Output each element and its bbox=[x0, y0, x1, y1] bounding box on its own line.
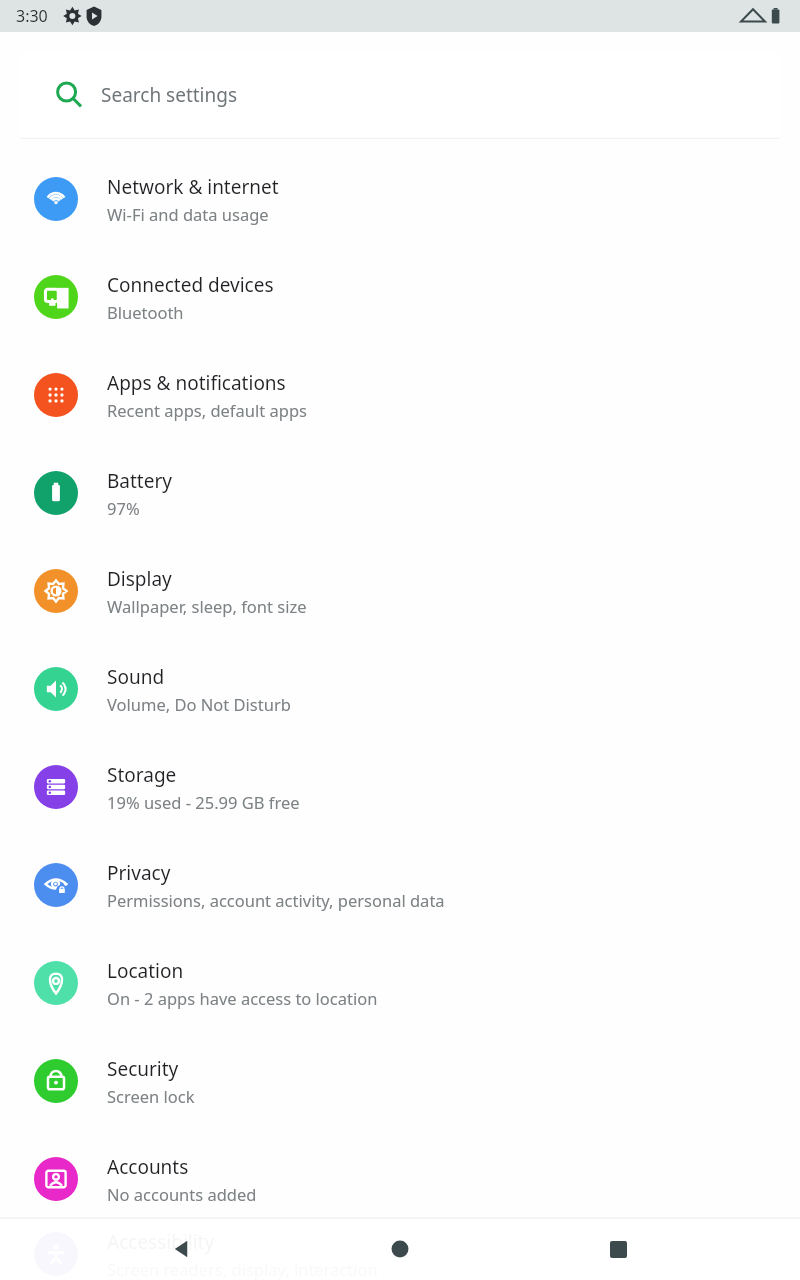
button[interactable]: Privacy bbox=[0, 836, 800, 934]
staticText: Screen lock bbox=[107, 1085, 195, 1107]
staticText: Permissions, account activity, personal … bbox=[107, 889, 445, 911]
staticText: Volume, Do Not Disturb bbox=[107, 693, 291, 715]
button[interactable]: Storage bbox=[0, 738, 800, 836]
staticText: 3:30 bbox=[16, 5, 48, 27]
staticText: Sound bbox=[107, 664, 165, 690]
staticText: Location bbox=[107, 958, 184, 984]
staticText: Accounts bbox=[107, 1154, 189, 1180]
button[interactable]: Location bbox=[0, 934, 800, 1032]
staticText: Security bbox=[107, 1056, 179, 1082]
staticText: Storage bbox=[107, 762, 177, 788]
other: Search bbox=[54, 80, 84, 110]
staticText: Connected devices bbox=[107, 272, 274, 298]
button[interactable]: Security bbox=[0, 1032, 800, 1130]
staticText: Wallpaper, sleep, font size bbox=[107, 595, 307, 617]
staticText: On - 2 apps have access to location bbox=[107, 987, 378, 1009]
button[interactable]: Accessibility bbox=[0, 1228, 800, 1280]
button[interactable]: Recent apps bbox=[582, 1218, 654, 1280]
button[interactable]: Accounts bbox=[0, 1130, 800, 1228]
staticText: Display bbox=[107, 566, 172, 592]
staticText: Search settings bbox=[101, 82, 238, 108]
button[interactable]: Display bbox=[0, 542, 800, 640]
button[interactable]: Battery bbox=[0, 444, 800, 542]
staticText: Bluetooth bbox=[107, 301, 184, 323]
staticText: 97% bbox=[107, 497, 140, 519]
staticText: No accounts added bbox=[107, 1183, 257, 1205]
staticText: Privacy bbox=[107, 860, 171, 886]
button[interactable]: Connected devices bbox=[0, 248, 800, 346]
staticText: 19% used - 25.99 GB free bbox=[107, 791, 300, 813]
button[interactable]: Network & internet bbox=[0, 150, 800, 248]
button[interactable]: Home bbox=[364, 1218, 436, 1280]
button[interactable]: Apps & notifications bbox=[0, 346, 800, 444]
staticText: Battery bbox=[107, 468, 172, 494]
staticText: Network & internet bbox=[107, 174, 279, 200]
staticText: Apps & notifications bbox=[107, 370, 286, 396]
button[interactable]: Back bbox=[146, 1218, 218, 1280]
button[interactable]: Sound bbox=[0, 640, 800, 738]
staticText: Recent apps, default apps bbox=[107, 399, 307, 421]
staticText: Wi-Fi and data usage bbox=[107, 203, 269, 225]
staticText: Accessibility bbox=[107, 1229, 215, 1255]
button[interactable]: Search settings bbox=[20, 52, 780, 138]
